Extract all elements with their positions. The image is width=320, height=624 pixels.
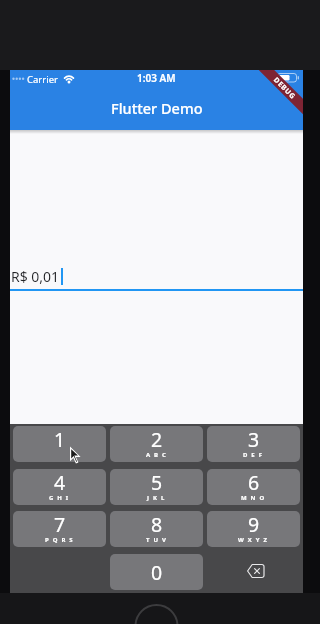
button[interactable]: 6 [207,469,300,505]
staticText: G H I [49,494,70,502]
staticText: 9 [248,511,260,538]
button[interactable]: R$ 0,01 [10,260,303,292]
staticText: 3 [248,426,260,453]
button[interactable] [247,564,265,578]
staticText: 4 [54,469,66,496]
staticText: DEBUG [271,75,298,102]
button[interactable]: 7 [13,511,106,547]
button[interactable]: 8 [110,511,203,547]
button[interactable]: 5 [110,469,203,505]
staticText: D E F [243,451,264,459]
staticText: 5 [151,469,163,496]
button[interactable]: 9 [207,511,300,547]
staticText: P Q R S [45,536,74,544]
button[interactable]: 1 [13,426,106,462]
staticText: T U V [146,536,168,544]
staticText: 1:03 AM [137,71,176,85]
staticText: Flutter Demo [111,98,203,118]
staticText: M N O [241,494,266,502]
button[interactable]: 4 [13,469,106,505]
staticText: 8 [151,511,163,538]
button[interactable]: 3 [207,426,300,462]
staticText: 6 [248,469,260,496]
staticText: 7 [54,511,66,538]
staticText: A B C [146,451,168,459]
button[interactable]: 2 [110,426,203,462]
staticText: Carrier [27,73,58,86]
staticText: 1 [54,426,66,453]
staticText: W X Y Z [238,536,269,544]
button[interactable]: 0 [110,554,203,590]
staticText: R$ 0,01 [11,267,60,286]
staticText: 2 [151,426,163,453]
staticText: 0 [151,559,163,586]
staticText: J K L [147,494,166,502]
